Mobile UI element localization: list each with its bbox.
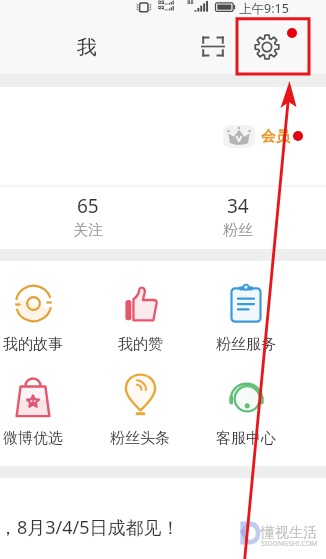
button[interactable]: 会员	[220, 118, 303, 154]
button[interactable]: 34	[188, 192, 288, 244]
staticText: SIDONGSHI.COM	[261, 539, 318, 549]
staticText: ，8月3/4/5日成都见！	[0, 515, 180, 540]
button[interactable]: Scan QR code	[190, 23, 236, 69]
staticText: 65	[77, 193, 99, 219]
staticText: 我的故事	[3, 335, 63, 354]
button[interactable]: 客服中心	[198, 374, 294, 454]
staticText: 关注	[73, 221, 103, 240]
staticText: 34	[227, 193, 249, 219]
staticText: 粉丝服务	[216, 335, 276, 354]
staticText: 客服中心	[216, 429, 276, 448]
button[interactable]: 粉丝服务	[198, 280, 294, 360]
button[interactable]: 我的赞	[92, 280, 188, 360]
staticText: 我的赞	[118, 335, 163, 354]
staticText: 微博优选	[3, 429, 63, 448]
staticText: 粉丝	[223, 221, 253, 240]
staticText: 我	[77, 35, 97, 60]
button[interactable]: 微博优选	[0, 374, 81, 454]
staticText: 上午9:15	[239, 0, 289, 17]
button[interactable]: Settings	[244, 24, 290, 70]
staticText: 粉丝头条	[110, 429, 170, 448]
staticText: 会员	[261, 127, 290, 145]
staticText: 懂视生活	[261, 524, 317, 542]
button[interactable]: 我的故事	[0, 280, 81, 360]
button[interactable]: 65	[38, 192, 138, 244]
button[interactable]: 粉丝头条	[92, 374, 188, 454]
